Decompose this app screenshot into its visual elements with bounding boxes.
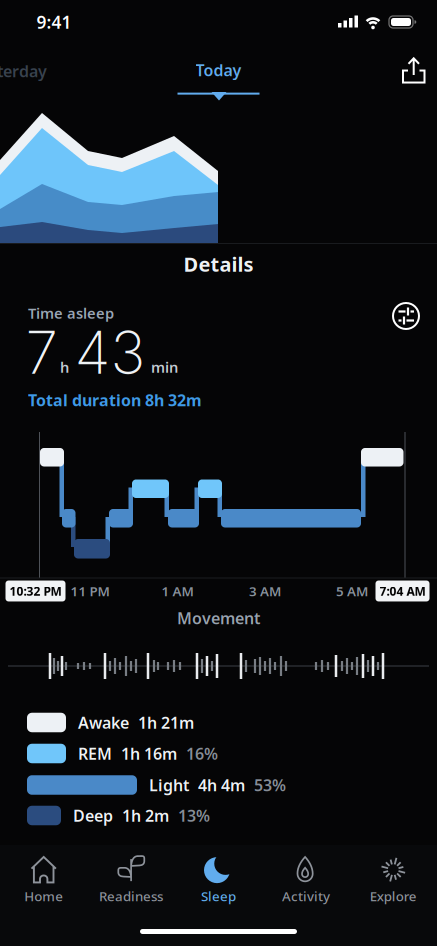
staticText: Deep — [73, 805, 113, 826]
staticText: 16% — [186, 743, 218, 764]
staticText: Awake — [78, 712, 129, 733]
staticText: Sleep — [201, 887, 236, 905]
staticText: 7:04 AM — [379, 583, 425, 599]
staticText: 7 — [25, 317, 57, 388]
button[interactable]: Sleep — [175, 852, 262, 908]
button[interactable]: Explore — [350, 852, 437, 908]
button[interactable]: Share — [0, 0, 437, 946]
staticText: 1h 16m — [121, 743, 177, 764]
staticText: Yesterday — [0, 60, 47, 82]
staticText: Today — [195, 59, 241, 81]
staticText: Details — [183, 251, 253, 277]
button[interactable]: Activity — [262, 852, 349, 908]
staticText: Readiness — [99, 887, 163, 905]
button[interactable]: Yesterday — [0, 60, 47, 82]
staticText: Total duration 8h 32m — [28, 389, 202, 411]
staticText: REM — [78, 743, 112, 764]
staticText: 13% — [178, 805, 210, 826]
staticText: 11 PM — [70, 582, 109, 600]
staticText: Explore — [370, 887, 417, 905]
staticText: Activity — [282, 887, 330, 905]
staticText: 1h 2m — [122, 805, 169, 826]
staticText: 1h 21m — [138, 712, 194, 733]
staticText: h — [60, 357, 69, 377]
staticText: Movement — [177, 607, 260, 629]
staticText: 4h 4m — [198, 774, 245, 796]
staticText: 53% — [254, 774, 286, 796]
staticText: Light — [149, 774, 189, 796]
staticText: 9:41 — [36, 10, 71, 33]
staticText: min — [151, 357, 178, 377]
button[interactable]: Home — [0, 852, 87, 908]
staticText: Time asleep — [28, 303, 114, 323]
staticText: 5 AM — [336, 582, 368, 600]
staticText: 10:32 PM — [9, 583, 61, 599]
staticText: Home — [24, 887, 63, 905]
button[interactable]: Adjust sleep time — [389, 299, 423, 333]
staticText: 43 — [74, 317, 145, 388]
staticText: 3 AM — [249, 582, 281, 600]
staticText: 1 AM — [161, 582, 193, 600]
button[interactable]: Today — [177, 59, 259, 95]
button[interactable]: Readiness — [88, 852, 175, 908]
